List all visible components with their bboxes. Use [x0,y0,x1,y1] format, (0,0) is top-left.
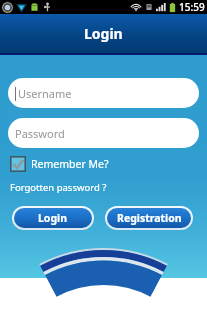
staticText: Registration [117,211,182,225]
button[interactable]: Forgotten password ? [10,181,107,194]
staticText: Login [84,24,123,43]
button[interactable]: Registration [107,208,191,228]
staticText: Login [38,211,68,225]
staticText: Username [18,86,72,101]
button[interactable]: Username [8,78,199,108]
button[interactable]: Password [8,118,199,148]
staticText: 15:59 [179,0,205,14]
staticText: Password [15,126,65,141]
button[interactable]: Login [14,208,92,228]
button[interactable]: Remember Me? [10,156,109,172]
staticText: Remember Me? [31,157,109,171]
